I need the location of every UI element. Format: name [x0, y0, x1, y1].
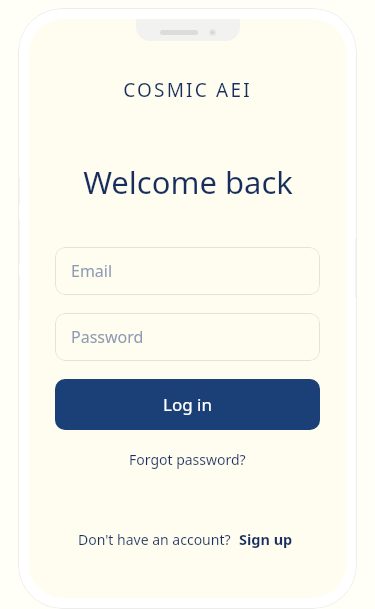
button[interactable]: Log in — [55, 379, 320, 430]
button[interactable]: Forgot password? — [121, 446, 254, 473]
staticText: Password — [71, 326, 144, 348]
staticText: COSMIC AEI — [123, 77, 252, 103]
staticText: Log in — [163, 393, 212, 416]
staticText: Email — [71, 260, 113, 282]
staticText: Sign up — [239, 529, 293, 549]
button[interactable]: Email — [55, 247, 320, 295]
staticText: Forgot password? — [129, 450, 246, 469]
staticText: Welcome back — [83, 161, 293, 203]
button[interactable]: Password — [55, 313, 320, 361]
button[interactable]: Sign up — [235, 526, 297, 552]
staticText: Don't have an account? — [78, 530, 231, 549]
